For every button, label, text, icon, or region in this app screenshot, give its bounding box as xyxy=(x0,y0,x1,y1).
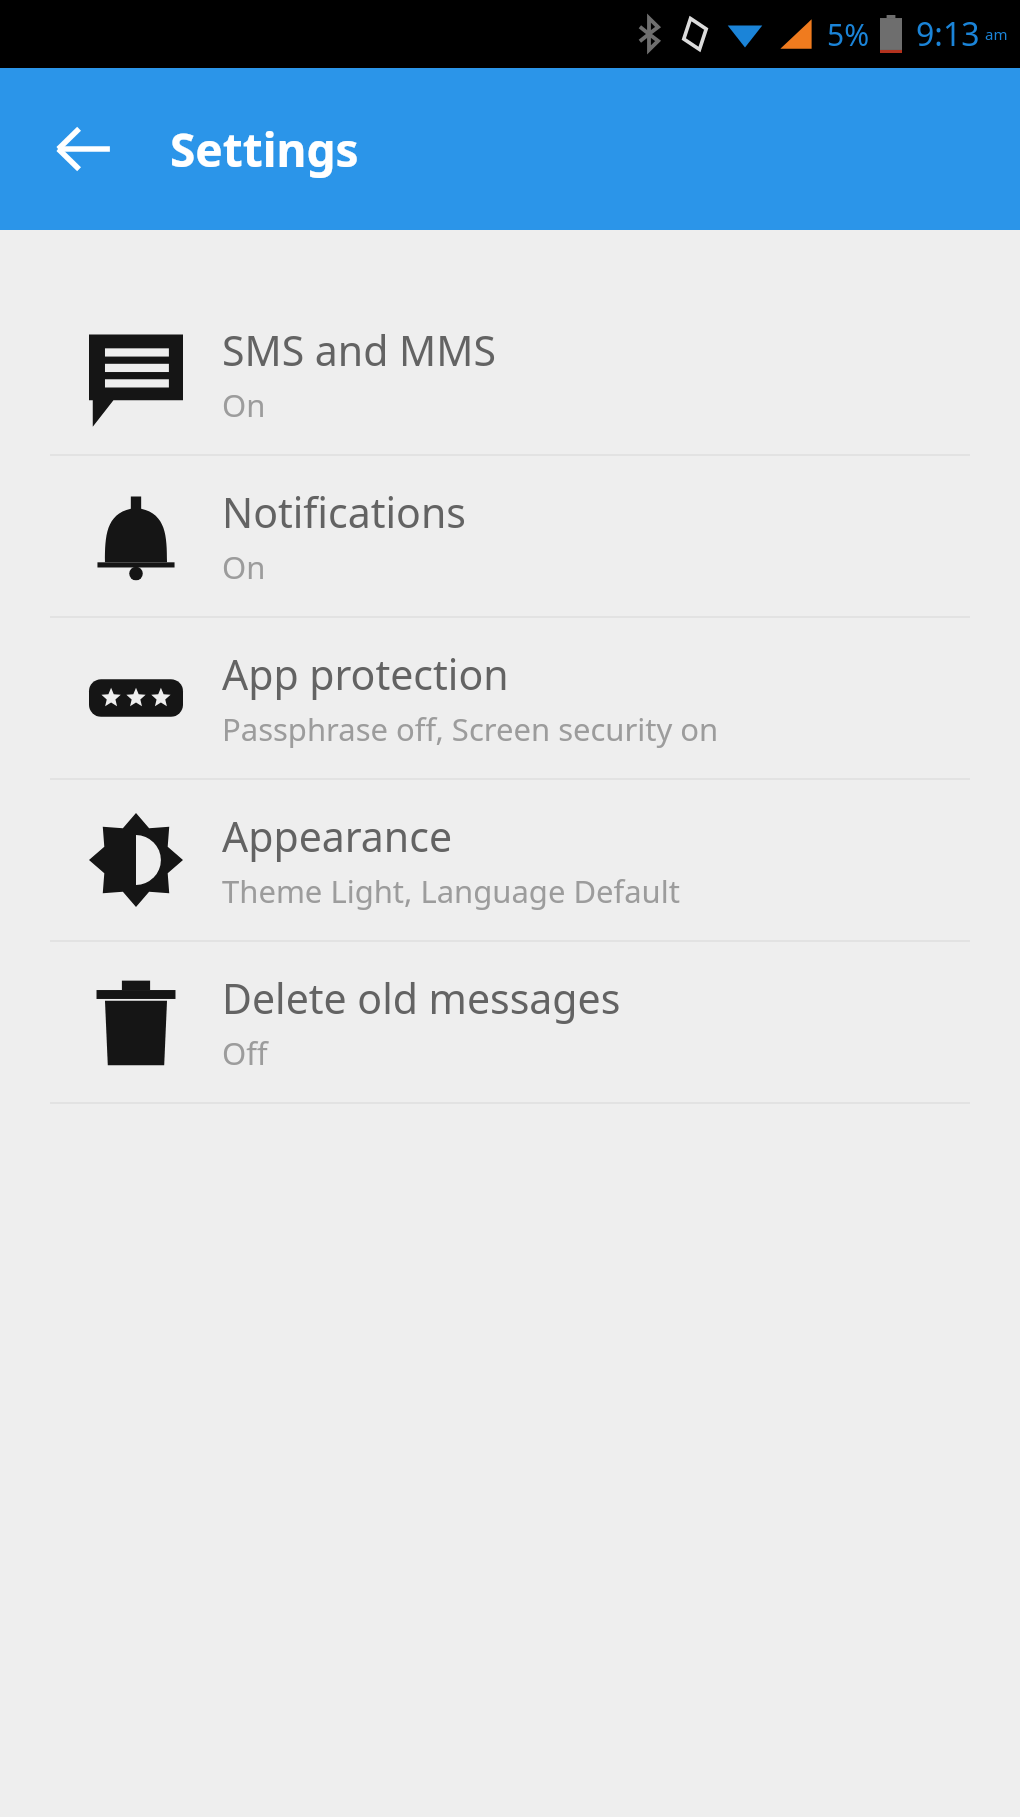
staticText: Delete old messages xyxy=(222,970,621,1026)
staticText: am xyxy=(985,24,1008,44)
button[interactable]: Notifications xyxy=(0,456,1020,616)
button[interactable]: App protection xyxy=(0,618,1020,778)
staticText: Settings xyxy=(170,118,359,181)
button[interactable]: Back xyxy=(31,97,135,201)
button[interactable]: Appearance xyxy=(0,780,1020,940)
staticText: 5% xyxy=(827,14,870,55)
staticText: On xyxy=(222,546,266,588)
staticText: Theme Light, Language Default xyxy=(222,870,680,912)
staticText: Passphrase off, Screen security on xyxy=(222,708,719,750)
button[interactable]: SMS and MMS xyxy=(0,294,1020,454)
staticText: 9:13 xyxy=(916,12,980,56)
staticText: App protection xyxy=(222,646,509,702)
staticText: Appearance xyxy=(222,808,453,864)
staticText: On xyxy=(222,384,266,426)
button[interactable]: Delete old messages xyxy=(0,942,1020,1102)
staticText: Off xyxy=(222,1032,268,1074)
staticText: Notifications xyxy=(222,484,466,540)
staticText: SMS and MMS xyxy=(222,322,496,378)
